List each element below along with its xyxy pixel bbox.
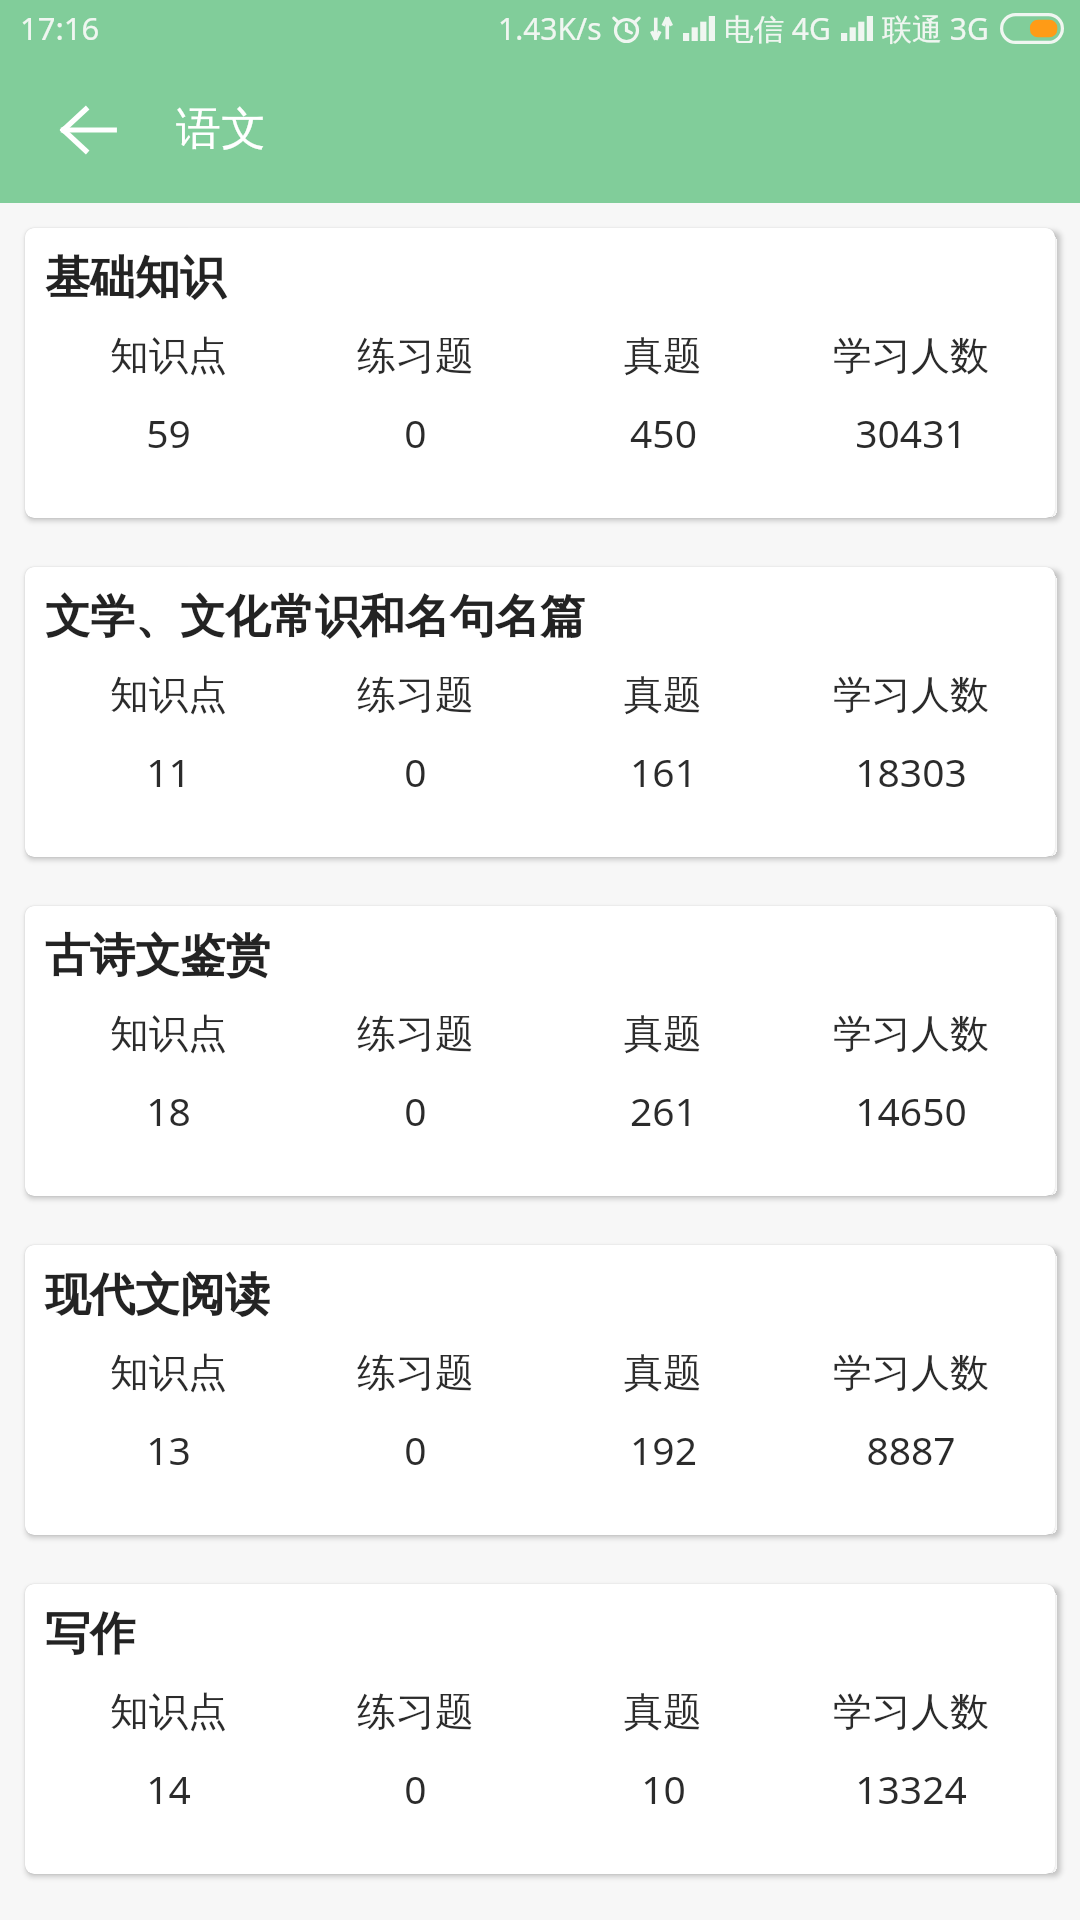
staticText: 真题 [624, 1348, 702, 1397]
staticText: 练习题 [357, 670, 474, 719]
staticText: 0 [404, 1762, 427, 1815]
staticText: 0 [404, 406, 427, 459]
button[interactable]: 文学、文化常识和名句名篇 [25, 567, 1055, 857]
staticText: 59 [146, 406, 191, 459]
staticText: 真题 [624, 1009, 702, 1058]
button[interactable]: 基础知识 [25, 228, 1055, 518]
staticText: 练习题 [357, 331, 474, 380]
staticText: 学习人数 [833, 1348, 989, 1397]
staticText: 192 [630, 1423, 697, 1476]
staticText: 11 [146, 745, 191, 798]
staticText: 联通 3G [882, 8, 989, 49]
staticText: 学习人数 [833, 1687, 989, 1736]
staticText: 真题 [624, 331, 702, 380]
staticText: 知识点 [110, 1009, 227, 1058]
staticText: 文学、文化常识和名句名篇 [45, 589, 585, 646]
staticText: 学习人数 [833, 670, 989, 719]
staticText: 知识点 [110, 670, 227, 719]
staticText: 知识点 [110, 1348, 227, 1397]
staticText: 电信 4G [724, 8, 831, 49]
button[interactable]: 古诗文鉴赏 [25, 906, 1055, 1196]
staticText: 10 [641, 1762, 686, 1815]
staticText: 18 [146, 1084, 191, 1137]
staticText: 14650 [855, 1084, 967, 1137]
staticText: 练习题 [357, 1687, 474, 1736]
staticText: 练习题 [357, 1009, 474, 1058]
staticText: 17:16 [20, 7, 100, 49]
staticText: 14 [146, 1762, 191, 1815]
button[interactable]: 现代文阅读 [25, 1245, 1055, 1535]
staticText: 0 [404, 1084, 427, 1137]
button[interactable]: Back [30, 72, 146, 188]
staticText: 0 [404, 745, 427, 798]
staticText: 知识点 [110, 1687, 227, 1736]
staticText: 13324 [855, 1762, 967, 1815]
staticText: 学习人数 [833, 331, 989, 380]
staticText: 450 [630, 406, 697, 459]
staticText: 语文 [176, 101, 266, 158]
staticText: 知识点 [110, 331, 227, 380]
staticText: 写作 [45, 1606, 135, 1663]
staticText: 练习题 [357, 1348, 474, 1397]
staticText: 真题 [624, 670, 702, 719]
button[interactable]: 写作 [25, 1584, 1055, 1874]
staticText: 30431 [855, 406, 967, 459]
staticText: 1.43K/s [498, 8, 602, 49]
staticText: 261 [630, 1084, 697, 1137]
staticText: 18303 [855, 745, 967, 798]
staticText: 真题 [624, 1687, 702, 1736]
staticText: 0 [404, 1423, 427, 1476]
staticText: 古诗文鉴赏 [45, 928, 270, 985]
staticText: 基础知识 [45, 250, 225, 307]
staticText: 现代文阅读 [45, 1267, 270, 1324]
staticText: 13 [146, 1423, 191, 1476]
staticText: 161 [630, 745, 697, 798]
staticText: 8887 [866, 1423, 956, 1476]
staticText: 学习人数 [833, 1009, 989, 1058]
